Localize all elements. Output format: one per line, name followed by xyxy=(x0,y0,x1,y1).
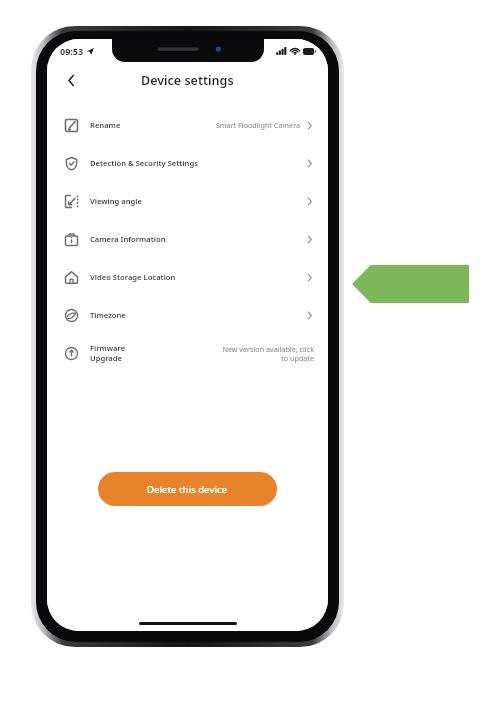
staticText: Camera Information xyxy=(90,234,166,244)
staticText: Video Storage Location xyxy=(90,272,176,282)
staticText: 09:53 xyxy=(60,45,84,57)
button[interactable]: Firmware xyxy=(47,334,328,372)
button[interactable]: Camera Information xyxy=(47,220,328,258)
staticText: Timezone xyxy=(90,310,126,320)
button[interactable]: Video Storage Location xyxy=(47,258,328,296)
button[interactable]: Detection & Security Settings xyxy=(47,144,328,182)
staticText: New version available, click to update xyxy=(218,344,314,363)
staticText: Rename xyxy=(90,120,121,130)
staticText: Device settings xyxy=(141,72,234,89)
staticText: Smart Floodlight Camera xyxy=(215,120,300,130)
staticText: Delete this device xyxy=(147,483,228,496)
button[interactable]: Delete this device xyxy=(98,472,277,506)
button[interactable]: Viewing angle xyxy=(47,182,328,220)
staticText: Upgrade xyxy=(90,353,122,363)
staticText: Detection & Security Settings xyxy=(90,158,198,168)
button[interactable]: Rename xyxy=(47,106,328,144)
button[interactable]: Timezone xyxy=(47,296,328,334)
button[interactable]: Back xyxy=(60,69,82,91)
staticText: Viewing angle xyxy=(90,196,142,206)
staticText: Firmware xyxy=(90,343,126,353)
